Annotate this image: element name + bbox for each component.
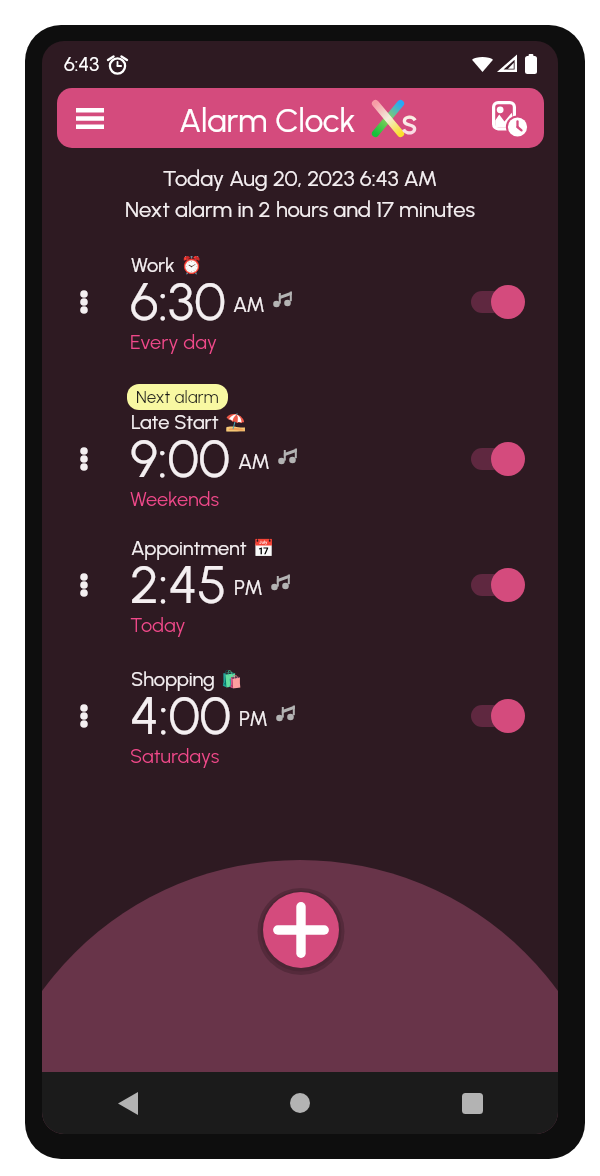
staticText: 6:43 <box>64 52 100 76</box>
staticText: s <box>402 102 417 138</box>
staticText: 6:30 <box>130 270 226 334</box>
staticText: Today <box>130 613 186 637</box>
button[interactable]: Work <box>42 253 558 358</box>
button[interactable]: Appointment <box>42 536 558 641</box>
button[interactable]: More options <box>69 570 99 600</box>
button[interactable]: More options <box>69 287 99 317</box>
staticText: Next alarm <box>136 387 219 407</box>
button[interactable]: Toggle alarm <box>471 285 525 319</box>
button[interactable]: Toggle alarm <box>471 568 525 602</box>
staticText: Today Aug 20, 2023 6:43 AM <box>42 165 558 191</box>
staticText: 📅 <box>253 538 275 558</box>
staticText: PM <box>239 706 268 731</box>
staticText: ⛱️ <box>225 412 247 432</box>
staticText: 9:00 <box>130 427 231 491</box>
staticText: Late Start <box>131 410 219 434</box>
button[interactable]: Next alarm <box>42 384 558 515</box>
staticText: 2:45 <box>130 553 227 617</box>
button[interactable]: Toggle alarm <box>471 442 525 476</box>
staticText: Saturdays <box>130 744 220 768</box>
button[interactable]: Menu <box>66 94 114 142</box>
staticText: 🛍️ <box>221 669 243 689</box>
staticText: Alarm Clock <box>179 101 356 141</box>
staticText: Next alarm in 2 hours and 17 minutes <box>42 196 558 222</box>
staticText: AM <box>238 449 270 474</box>
staticText: Work <box>131 253 175 277</box>
button[interactable]: More options <box>69 444 99 474</box>
staticText: 4:00 <box>130 684 232 748</box>
button[interactable]: Shopping <box>42 667 558 772</box>
button[interactable]: Toggle alarm <box>471 699 525 733</box>
button[interactable]: Add alarm <box>257 886 345 974</box>
button[interactable]: More options <box>69 701 99 731</box>
staticText: Shopping <box>131 667 215 691</box>
staticText: PM <box>234 575 263 600</box>
staticText: ⏰ <box>181 255 203 275</box>
button[interactable]: Recent apps <box>386 1072 558 1134</box>
staticText: Appointment <box>131 536 247 560</box>
button[interactable]: Screensaver <box>486 96 530 140</box>
button[interactable]: Back <box>42 1072 214 1134</box>
staticText: AM <box>233 292 265 317</box>
button[interactable]: Home <box>214 1072 386 1134</box>
staticText: Every day <box>130 330 217 354</box>
staticText: Weekends <box>130 487 220 511</box>
